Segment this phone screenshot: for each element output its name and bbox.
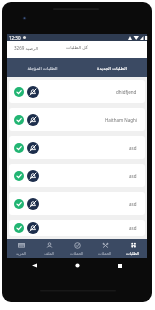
button[interactable]: Haitham Naghi	[9, 108, 145, 131]
staticText: الحملات	[70, 251, 84, 256]
staticText: الحملات	[98, 251, 112, 256]
button[interactable]: الطلبات	[119, 239, 147, 258]
staticText: 3269 الرصيد	[14, 45, 39, 51]
button[interactable]: المزيد	[7, 239, 35, 258]
button[interactable]: الملف	[35, 239, 63, 258]
other: Home	[75, 263, 80, 268]
button[interactable]: dhidfjend	[9, 80, 145, 103]
button[interactable]: الطلبات المؤجلة	[7, 58, 77, 77]
button[interactable]: الحملات	[91, 239, 119, 258]
staticText: الملف	[44, 251, 55, 256]
staticText: asd	[129, 145, 137, 151]
staticText: 12:30	[9, 35, 21, 41]
staticText: asd	[129, 173, 137, 179]
staticText: الطلبات	[126, 251, 140, 256]
button[interactable]: asd	[9, 192, 145, 215]
staticText: dhidfjend	[116, 89, 137, 95]
button[interactable]: asd	[9, 164, 145, 187]
staticText: كل الطلبات	[66, 44, 88, 50]
button[interactable]: asd	[9, 136, 145, 159]
button[interactable]: الطلبات الجديدة	[77, 58, 147, 77]
button[interactable]: asd	[9, 220, 145, 236]
button[interactable]: الحملات	[63, 239, 91, 258]
staticText: المزيد	[16, 251, 27, 256]
staticText: الطلبات الجديدة	[97, 65, 127, 71]
staticText: asd	[129, 201, 137, 207]
other: Back	[32, 263, 37, 268]
staticText: Haitham Naghi	[105, 117, 137, 123]
staticText: الطلبات المؤجلة	[27, 65, 58, 71]
staticText: asd	[129, 225, 137, 231]
